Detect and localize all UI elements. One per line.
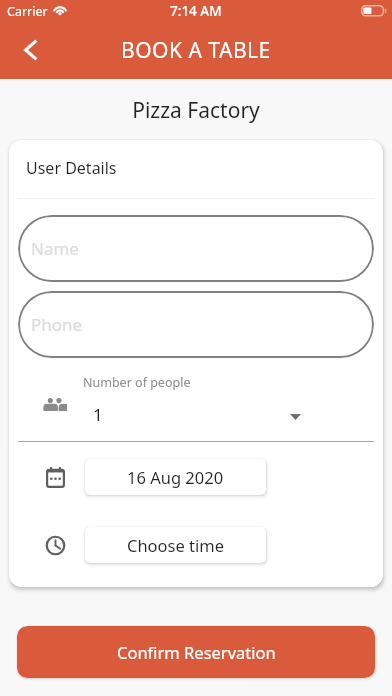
button[interactable]: Number of people <box>9 371 383 427</box>
button[interactable]: Phone <box>18 291 374 358</box>
staticText: Confirm Reservation <box>117 641 276 663</box>
button[interactable]: 16 Aug 2020 <box>85 459 266 495</box>
staticText: User Details <box>26 157 117 179</box>
button[interactable]: Pick time <box>40 530 71 561</box>
button[interactable]: Confirm Reservation <box>17 626 375 678</box>
staticText: 7:14 AM <box>170 2 222 20</box>
button[interactable]: Pick date <box>40 462 71 493</box>
staticText: BOOK A TABLE <box>121 36 271 65</box>
staticText: Name <box>31 237 79 260</box>
button[interactable]: Back <box>11 30 51 70</box>
staticText: 16 Aug 2020 <box>127 466 224 488</box>
staticText: Carrier <box>7 3 48 20</box>
staticText: Pizza Factory <box>132 96 260 125</box>
button[interactable]: Choose time <box>85 527 266 563</box>
staticText: 1 <box>93 403 103 426</box>
staticText: Phone <box>31 313 83 336</box>
staticText: Number of people <box>83 374 191 391</box>
button[interactable]: Name <box>18 215 374 282</box>
staticText: Choose time <box>127 534 225 556</box>
